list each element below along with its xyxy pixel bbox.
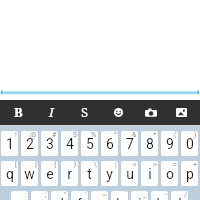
staticText: 6 <box>106 136 114 152</box>
staticText: + <box>193 161 197 169</box>
staticText: r <box>67 166 72 182</box>
staticText: 9 <box>166 136 174 152</box>
button[interactable]: h <box>111 191 128 200</box>
staticText: u <box>126 166 134 182</box>
staticText: # <box>52 131 57 139</box>
button[interactable]: w <box>21 161 38 186</box>
staticText: 1 <box>6 136 14 152</box>
staticText: ' <box>85 191 87 199</box>
staticText: S <box>81 103 89 121</box>
button[interactable]: u <box>121 161 138 186</box>
button[interactable]: 7 <box>121 131 138 156</box>
staticText: ( <box>174 131 177 139</box>
staticText: & <box>132 131 137 139</box>
staticText: = <box>173 161 177 169</box>
staticText: $ <box>73 131 77 139</box>
staticText: ! <box>15 131 17 139</box>
staticText: 8 <box>146 136 154 152</box>
staticText: t <box>87 166 92 182</box>
staticText: j <box>138 196 142 200</box>
staticText: ^ <box>114 131 117 139</box>
staticText: 4 <box>66 136 74 152</box>
button[interactable]: 1 <box>1 131 18 156</box>
button[interactable]: 0 <box>181 131 198 156</box>
staticText: i <box>148 166 152 182</box>
staticText: ) <box>194 131 197 139</box>
button[interactable]: B <box>2 100 34 125</box>
staticText: 3 <box>46 136 54 152</box>
button[interactable]: 6 <box>101 131 118 156</box>
button[interactable]: 4 <box>61 131 78 156</box>
staticText: p <box>186 166 194 182</box>
staticText: 0 <box>186 136 194 152</box>
button[interactable]: d <box>51 191 68 200</box>
button[interactable]: g <box>91 191 108 200</box>
staticText: / <box>184 191 187 199</box>
button[interactable]: i <box>141 161 158 186</box>
staticText: ] <box>35 161 37 169</box>
button[interactable]: e <box>41 161 58 186</box>
button[interactable]: k <box>151 191 168 200</box>
staticText: 2 <box>26 136 34 152</box>
button[interactable]: S <box>69 100 101 125</box>
staticText: ; <box>45 191 47 199</box>
staticText: _ <box>143 191 147 199</box>
button[interactable]: r <box>61 161 78 186</box>
staticText: [ <box>15 161 17 169</box>
staticText: e <box>46 166 54 182</box>
staticText: : <box>25 191 27 199</box>
button[interactable]: I <box>35 100 67 125</box>
staticText: I <box>49 103 54 121</box>
button[interactable]: a <box>11 191 28 200</box>
button[interactable]: o <box>161 161 178 186</box>
button[interactable]: t <box>81 161 98 186</box>
staticText: " <box>64 191 67 199</box>
staticText: y <box>106 166 113 182</box>
button[interactable]: 3 <box>41 131 58 156</box>
button[interactable]: j <box>131 191 148 200</box>
staticText: < <box>133 161 137 169</box>
staticText: > <box>153 161 157 169</box>
button[interactable]: q <box>1 161 18 186</box>
button[interactable]: Emoji <box>102 100 134 125</box>
staticText: * <box>153 131 157 139</box>
staticText: 5 <box>86 136 94 152</box>
button[interactable]: p <box>181 161 198 186</box>
staticText: k <box>156 196 164 200</box>
staticText: % <box>91 131 97 139</box>
button[interactable]: 5 <box>81 131 98 156</box>
staticText: ` <box>124 191 127 199</box>
staticText: @ <box>30 131 37 139</box>
staticText: - <box>165 191 167 199</box>
staticText: q <box>6 166 14 182</box>
staticText: h <box>116 196 124 200</box>
staticText: w <box>24 166 35 182</box>
button[interactable]: f <box>71 191 88 200</box>
staticText: o <box>166 166 174 182</box>
button[interactable]: 8 <box>141 131 158 156</box>
button[interactable]: s <box>31 191 48 200</box>
staticText: { <box>54 161 57 169</box>
button[interactable]: Camera <box>135 100 167 125</box>
staticText: ~ <box>102 191 107 199</box>
button[interactable] <box>0 0 200 100</box>
button[interactable]: 2 <box>21 131 38 156</box>
staticText: l <box>178 196 182 200</box>
button[interactable]: 9 <box>161 131 178 156</box>
staticText: d <box>56 196 64 200</box>
staticText: B <box>14 103 23 121</box>
button[interactable]: Gallery <box>165 100 197 125</box>
staticText: | <box>115 161 117 169</box>
button[interactable]: l <box>171 191 188 200</box>
staticText: f <box>77 196 82 200</box>
staticText: \ <box>94 161 97 169</box>
staticText: } <box>74 161 77 169</box>
staticText: 7 <box>126 136 134 152</box>
button[interactable]: y <box>101 161 118 186</box>
